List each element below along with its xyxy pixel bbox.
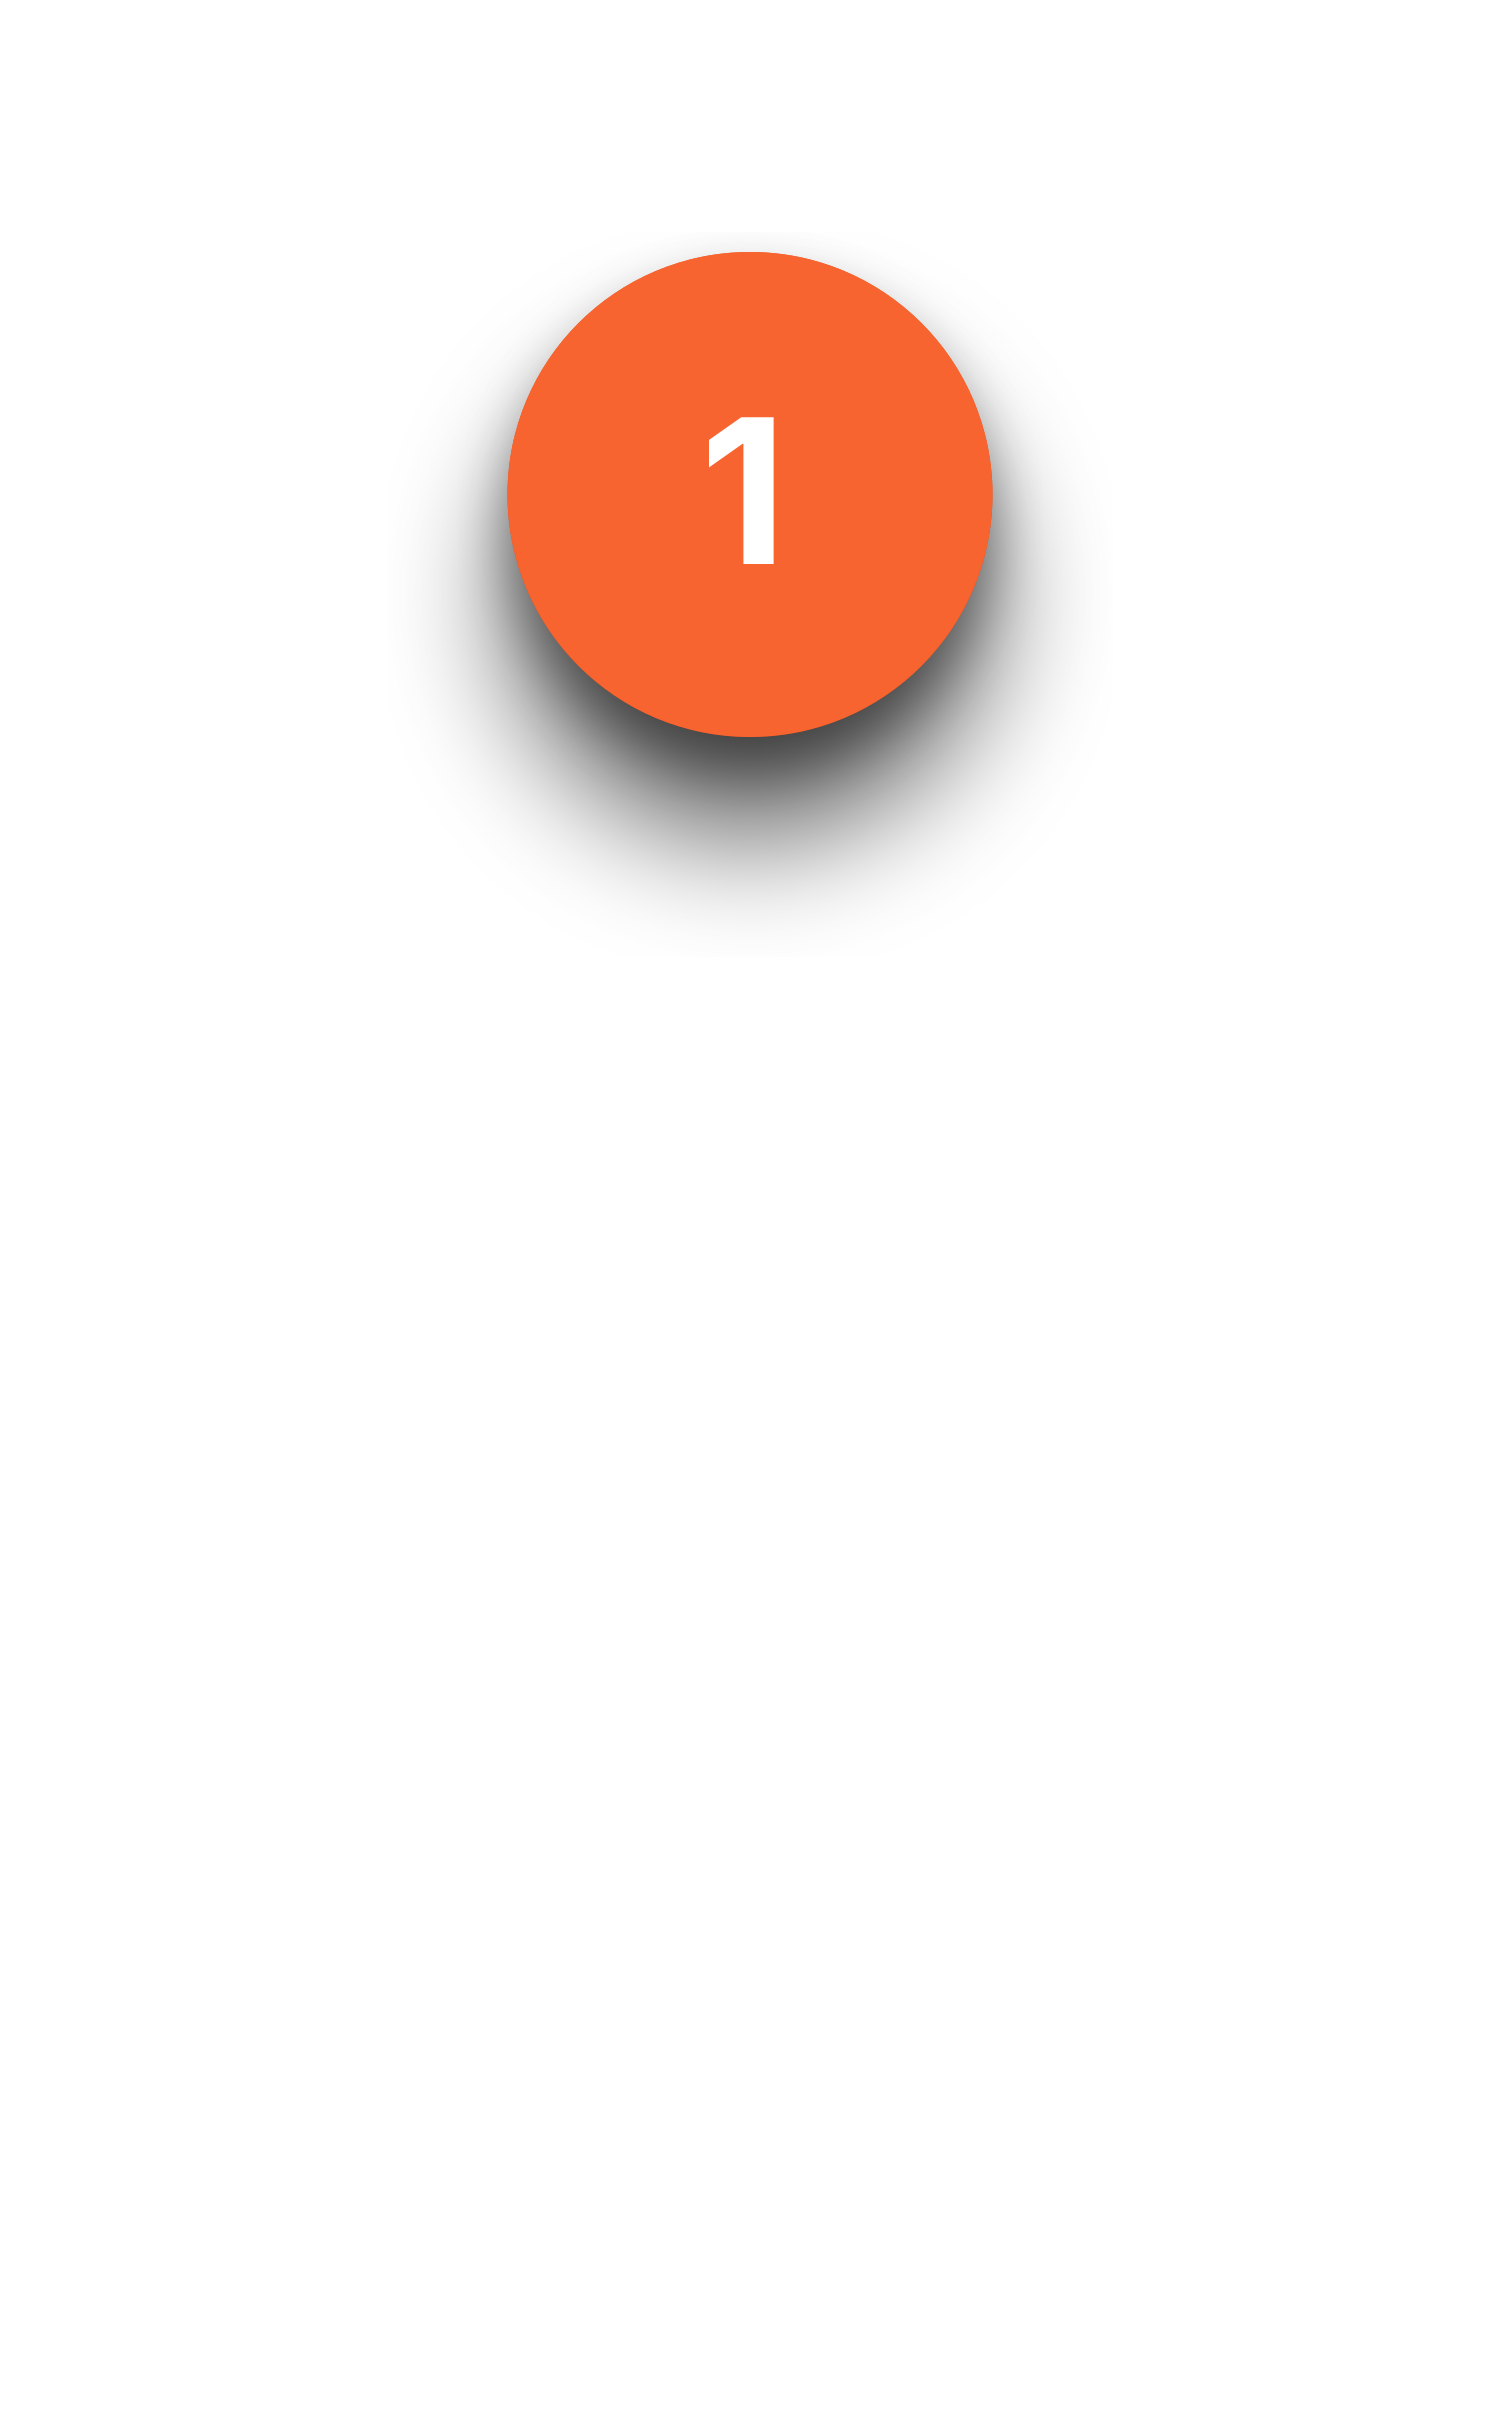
- button[interactable]: 1: [507, 252, 992, 737]
- staticText: 1: [699, 368, 786, 613]
